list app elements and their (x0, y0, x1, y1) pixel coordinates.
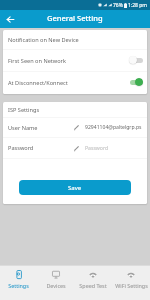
button[interactable]: Password (3, 138, 147, 158)
staticText: Password (85, 145, 109, 152)
button[interactable]: Settings (0, 266, 37, 300)
button[interactable]: First Seen on Network (3, 50, 147, 71)
staticText: First Seen on Network (8, 57, 66, 65)
staticText: Settings (8, 282, 29, 289)
staticText: 76% (113, 2, 123, 9)
staticText: WiFi Settings (115, 282, 148, 289)
button[interactable]: At Disconnect/Konnect (3, 72, 147, 94)
button[interactable]: WiFi Settings (112, 266, 150, 300)
staticText: General Setting (47, 13, 103, 23)
staticText: 1:28 pm (128, 2, 147, 9)
staticText: 92941104@paltelgrp.ps (85, 124, 142, 131)
staticText: Save (68, 184, 82, 192)
staticText: Notification on New Device (8, 36, 79, 44)
button[interactable]: User Name (3, 118, 147, 137)
staticText: ISP Settings (8, 106, 40, 114)
staticText: User Name (8, 124, 38, 132)
staticText: Password (8, 144, 34, 152)
staticText: At Disconnect/Konnect (8, 79, 68, 87)
button[interactable]: Devices (37, 266, 74, 300)
button[interactable]: Save (19, 180, 131, 195)
staticText: Devices (46, 282, 66, 289)
staticText: Speed Test (79, 282, 107, 289)
button[interactable]: Speed Test (74, 266, 112, 300)
button[interactable]: Back (3, 12, 17, 26)
